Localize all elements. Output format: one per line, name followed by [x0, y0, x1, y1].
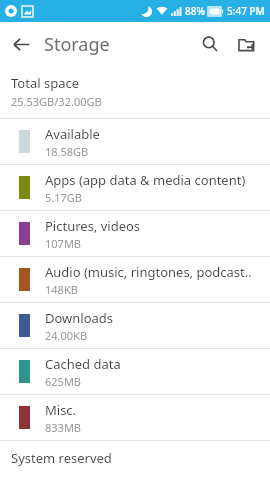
staticText: Cached data: [45, 355, 121, 373]
staticText: Downloads: [45, 309, 114, 327]
staticText: 107MB: [45, 236, 82, 251]
button[interactable]: Cached data: [0, 349, 270, 394]
button[interactable]: Available: [0, 119, 270, 164]
staticText: 833MB: [45, 420, 82, 435]
staticText: 88%: [185, 4, 205, 18]
staticText: 5:47 PM: [227, 4, 265, 18]
staticText: System reserved: [11, 449, 112, 467]
button[interactable]: Back: [4, 27, 38, 61]
button[interactable]: Audio (music, ringtones, podcast..: [0, 257, 270, 302]
staticText: Pictures, videos: [45, 217, 141, 235]
button[interactable]: Downloads: [0, 303, 270, 348]
staticText: 148KB: [45, 282, 78, 297]
staticText: Misc.: [45, 401, 77, 419]
staticText: Storage: [44, 32, 110, 57]
staticText: 625MB: [45, 374, 82, 389]
button[interactable]: USB storage: [228, 26, 264, 62]
staticText: Available: [45, 125, 100, 143]
staticText: 25.53GB/32.00GB: [11, 94, 102, 109]
staticText: 18.58GB: [45, 144, 89, 159]
staticText: Audio (music, ringtones, podcast..: [45, 263, 252, 281]
button[interactable]: Total space: [0, 66, 270, 118]
staticText: 24.00KB: [45, 328, 88, 343]
button[interactable]: System reserved: [0, 441, 270, 480]
staticText: Total space: [11, 74, 79, 92]
button[interactable]: Search: [192, 26, 228, 62]
button[interactable]: Pictures, videos: [0, 211, 270, 256]
button[interactable]: Misc.: [0, 395, 270, 440]
staticText: 5.17GB: [45, 190, 82, 205]
staticText: Apps (app data & media content): [45, 171, 246, 189]
button[interactable]: Apps (app data & media content): [0, 165, 270, 210]
